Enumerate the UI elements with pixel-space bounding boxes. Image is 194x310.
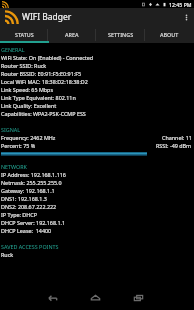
button[interactable]: SETTINGS bbox=[96, 26, 145, 43]
staticText: WiFi State: On (Enabled) - Connected bbox=[1, 54, 94, 61]
staticText: DNS2: 208.67.222.222 bbox=[1, 203, 57, 210]
staticText: Channel: 11 bbox=[162, 134, 192, 141]
staticText: RSSI: -49 dBm bbox=[156, 142, 192, 149]
staticText: Capabilities: WPA2-PSK-CCMP ESS bbox=[1, 110, 86, 117]
staticText: Router BSSID: E0:91:F5:E0:91:F5 bbox=[1, 70, 82, 77]
staticText: NETWORK bbox=[1, 163, 27, 170]
button[interactable]: AREA bbox=[48, 26, 96, 43]
staticText: SAVED ACCESS POINTS bbox=[1, 243, 59, 250]
button[interactable]: Back bbox=[41, 286, 63, 308]
staticText: Percent: 75 % bbox=[1, 142, 36, 149]
staticText: Link Quality: Excellent bbox=[1, 102, 57, 109]
staticText: SIGNAL bbox=[1, 126, 21, 133]
staticText: Netmask: 255.255.255.0 bbox=[1, 179, 62, 186]
button[interactable]: More options bbox=[178, 8, 194, 26]
staticText: Gateway: 192.168.1.1 bbox=[1, 187, 55, 194]
staticText: WIFI Badger bbox=[22, 11, 72, 23]
staticText: Link Speed: 65 Mbps bbox=[1, 86, 54, 93]
button[interactable]: STATUS bbox=[0, 26, 48, 43]
staticText: DNS1: 192.168.1.3 bbox=[1, 195, 47, 202]
staticText: Local WiFi MAC: 18:38:D2:18:38:D2 bbox=[1, 78, 88, 85]
staticText: DHCP Lease: 14400 bbox=[1, 227, 52, 234]
staticText: Frequency: 2462 MHz bbox=[1, 134, 56, 141]
button[interactable]: Recents bbox=[127, 286, 149, 308]
button[interactable]: ABOUT bbox=[145, 26, 194, 43]
staticText: IP Address: 192.168.1.116 bbox=[1, 171, 66, 178]
staticText: ABOUT bbox=[160, 31, 179, 38]
staticText: GENERAL bbox=[1, 46, 25, 53]
button[interactable]: Home bbox=[84, 286, 106, 308]
staticText: AREA bbox=[65, 31, 79, 38]
staticText: IP Type: DHCP bbox=[1, 211, 37, 218]
staticText: Link Type Equivalent: 802.11n bbox=[1, 94, 76, 101]
staticText: DHCP Server: 192.168.1.1 bbox=[1, 219, 66, 226]
staticText: Ruck bbox=[1, 251, 14, 258]
staticText: 12:45 PM bbox=[169, 1, 192, 8]
staticText: Router SSID: Ruck bbox=[1, 62, 47, 69]
staticText: SETTINGS bbox=[108, 31, 134, 38]
staticText: STATUS bbox=[15, 31, 34, 38]
